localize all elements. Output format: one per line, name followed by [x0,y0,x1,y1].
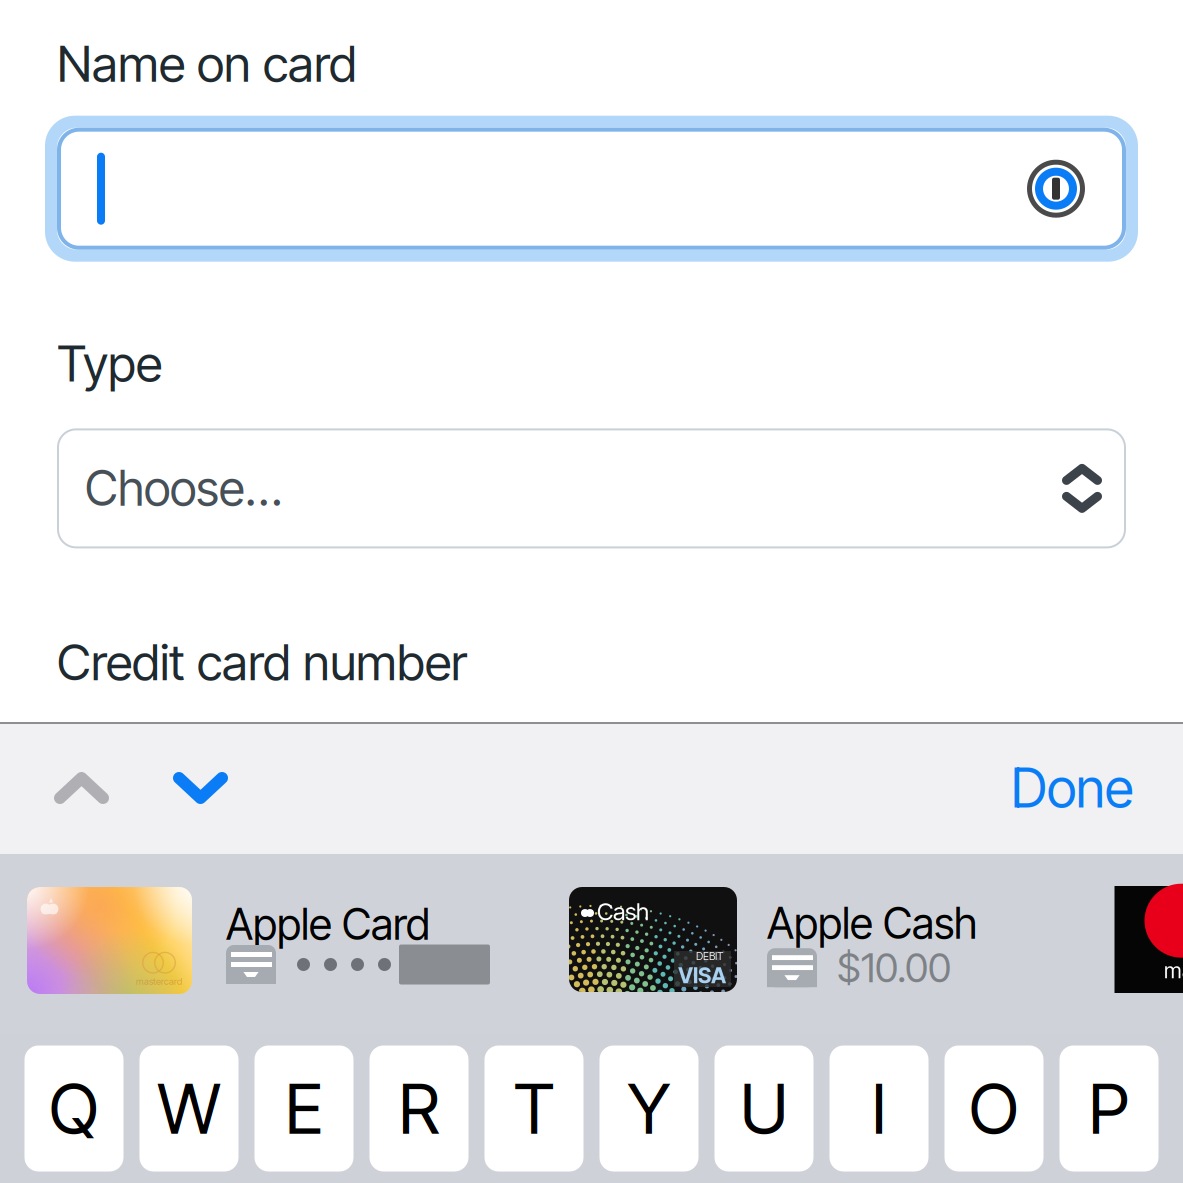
button[interactable]: U [714,1045,813,1171]
button[interactable]: R [369,1045,468,1171]
button[interactable]: Q [24,1045,123,1171]
button[interactable]: Cash [569,854,1009,1067]
button[interactable]: Fill with 1Password [1026,159,1138,219]
button[interactable]: O [944,1045,1043,1171]
staticText: W [157,1067,220,1150]
button[interactable]: Previous field [22,722,141,854]
button[interactable]: Next field [141,722,260,854]
staticText: $10.00 [837,943,951,992]
staticText: Done [1011,756,1133,820]
button[interactable]: I [829,1045,928,1171]
staticText: T [513,1067,554,1150]
staticText: U [740,1067,788,1150]
button[interactable]: E [254,1045,353,1171]
staticText: Q [49,1067,99,1150]
button[interactable]: W [139,1045,238,1171]
staticText: P [1088,1067,1129,1150]
staticText: DEBIT [696,950,723,962]
staticText: R [398,1067,439,1150]
staticText: Name on card [57,34,357,94]
staticText: Choose… [85,459,282,517]
staticText: mastercard [136,976,182,987]
staticText: Y [627,1067,670,1150]
button[interactable]: Choose… [57,428,1126,548]
staticText: mas [1164,958,1183,983]
staticText: I [871,1067,886,1150]
staticText: Credit card number [57,632,467,692]
staticText: O [969,1067,1019,1150]
button[interactable]: P [1059,1045,1158,1171]
staticText: Type [57,334,162,393]
button[interactable]: T [484,1045,583,1171]
staticText: Apple Cash [767,897,977,949]
button[interactable]: Done [1011,722,1133,854]
button[interactable]: Y [599,1045,698,1171]
staticText: Cash [597,897,649,926]
button[interactable]: mastercard [27,854,487,1067]
staticText: Apple Card [226,898,430,950]
staticText: VISA [678,962,726,988]
staticText: E [285,1067,323,1150]
